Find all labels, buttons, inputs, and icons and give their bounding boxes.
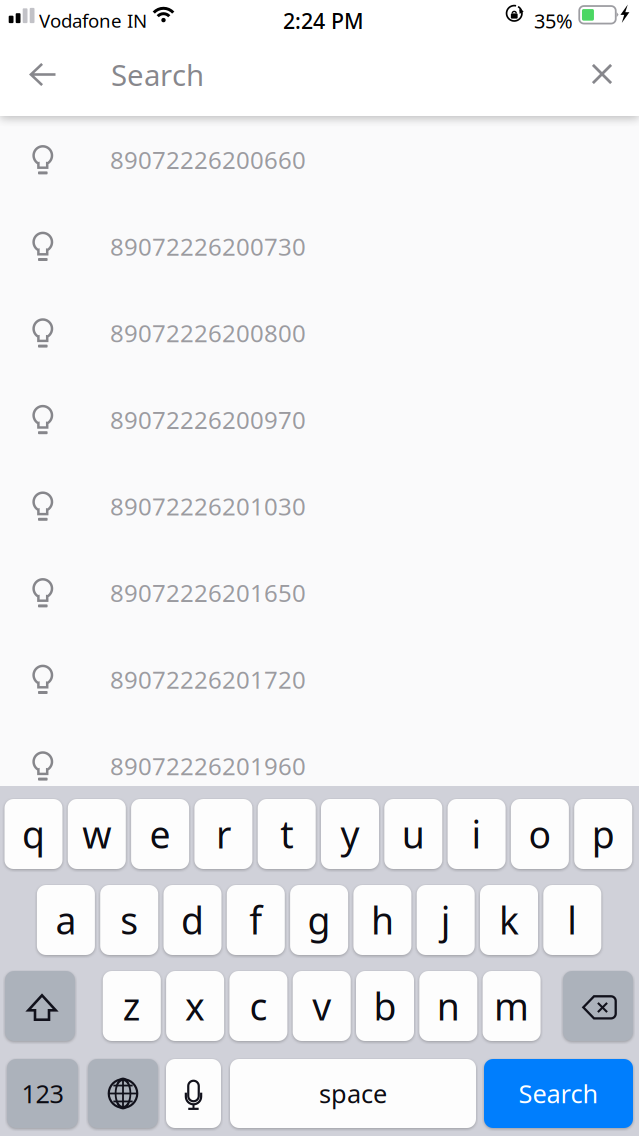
staticText: 89072226201720 [110, 663, 306, 695]
staticText: u [402, 809, 425, 859]
button[interactable]: u [384, 799, 442, 869]
staticText: 123 [21, 1077, 63, 1110]
button[interactable]: v [293, 971, 351, 1041]
staticText: l [567, 895, 577, 945]
button[interactable]: r [194, 799, 252, 869]
button[interactable]: p [574, 799, 632, 869]
staticText: k [499, 895, 519, 945]
button[interactable]: space [230, 1059, 476, 1128]
staticText: 89072226200970 [110, 404, 306, 436]
staticText: q [22, 809, 45, 859]
button[interactable]: j [417, 885, 475, 955]
button[interactable]: Shift [5, 971, 75, 1041]
staticText: 89072226200730 [110, 230, 306, 262]
button[interactable]: 89072226200800 [0, 289, 639, 376]
staticText: w [82, 809, 111, 859]
button[interactable]: l [543, 885, 601, 955]
button[interactable]: x [166, 971, 224, 1041]
button[interactable]: 89072226200660 [0, 116, 639, 203]
staticText: z [123, 981, 141, 1031]
button[interactable]: h [353, 885, 411, 955]
staticText: 89072226200660 [110, 144, 306, 176]
button[interactable]: t [258, 799, 316, 869]
button[interactable]: Next keyboard [88, 1059, 158, 1128]
button[interactable]: Search [484, 1059, 633, 1128]
button[interactable]: Search [111, 40, 221, 116]
staticText: 2:24 PM [283, 6, 364, 35]
staticText: Search [111, 55, 204, 94]
staticText: e [150, 809, 171, 859]
staticText: m [494, 981, 529, 1031]
button[interactable]: i [448, 799, 506, 869]
staticText: h [371, 895, 394, 945]
staticText: 89072226200800 [110, 317, 306, 349]
button[interactable]: k [480, 885, 538, 955]
button[interactable]: g [290, 885, 348, 955]
button[interactable]: m [483, 971, 541, 1041]
button[interactable]: f [227, 885, 285, 955]
button[interactable]: 89072226200730 [0, 203, 639, 289]
button[interactable]: 89072226201030 [0, 462, 639, 549]
staticText: j [441, 895, 451, 945]
staticText: p [592, 809, 615, 859]
staticText: b [373, 981, 396, 1031]
staticText: Search [518, 1077, 598, 1110]
staticText: r [216, 809, 231, 859]
staticText: 35% [534, 7, 573, 34]
staticText: o [528, 809, 551, 859]
staticText: a [55, 895, 76, 945]
staticText: d [181, 895, 204, 945]
staticText: space [319, 1077, 387, 1110]
button[interactable]: s [100, 885, 158, 955]
staticText: Vodafone IN [39, 8, 147, 33]
button[interactable]: e [131, 799, 189, 869]
staticText: 89072226201960 [110, 750, 306, 782]
staticText: v [312, 981, 331, 1031]
staticText: x [185, 981, 205, 1031]
button[interactable]: o [511, 799, 569, 869]
staticText: c [249, 981, 267, 1031]
staticText: n [437, 981, 460, 1031]
button[interactable]: a [37, 885, 95, 955]
button[interactable]: q [4, 799, 62, 869]
button[interactable]: z [103, 971, 161, 1041]
button[interactable]: 89072226200970 [0, 376, 639, 462]
staticText: i [472, 809, 482, 859]
staticText: 89072226201650 [110, 577, 306, 609]
button[interactable]: 89072226201650 [0, 549, 639, 636]
staticText: 89072226201030 [110, 490, 306, 522]
button[interactable]: b [356, 971, 414, 1041]
button[interactable]: Dictate [166, 1059, 221, 1128]
button[interactable]: Close [563, 40, 639, 116]
button[interactable]: w [68, 799, 126, 869]
staticText: g [308, 895, 331, 945]
button[interactable]: 89072226201960 [0, 722, 639, 809]
staticText: s [120, 895, 138, 945]
button[interactable]: 123 [7, 1059, 78, 1128]
button[interactable]: Delete [563, 971, 633, 1041]
staticText: f [249, 895, 262, 945]
button[interactable]: y [321, 799, 379, 869]
button[interactable]: Back [0, 40, 86, 116]
button[interactable]: d [163, 885, 221, 955]
button[interactable]: 89072226201720 [0, 636, 639, 722]
button[interactable]: n [419, 971, 477, 1041]
button[interactable]: c [229, 971, 287, 1041]
staticText: t [280, 809, 293, 859]
staticText: y [340, 809, 359, 859]
